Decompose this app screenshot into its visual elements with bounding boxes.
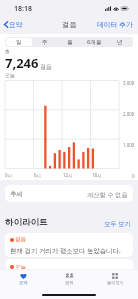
staticText: 총 (5, 48, 10, 54)
button[interactable]: 일 (6, 38, 32, 46)
staticText: 년 (117, 39, 123, 46)
staticText: 0 (132, 173, 135, 179)
staticText: 요약 (9, 20, 23, 29)
button[interactable]: 모두 보기 (102, 217, 133, 229)
button[interactable]: 오늘 (5, 259, 133, 269)
staticText: 오늘 (15, 264, 27, 269)
staticText: 2,000 (123, 111, 135, 117)
button[interactable]: Browse (92, 270, 138, 288)
staticText: 걸음 (62, 20, 77, 29)
staticText: 12시 (63, 172, 73, 178)
staticText: 1,000 (123, 142, 135, 148)
staticText: 3,000 (123, 80, 135, 86)
button[interactable]: Sharing (46, 270, 92, 288)
button[interactable]: 요약 (0, 18, 27, 31)
staticText: 둘러보기 (107, 280, 124, 285)
staticText: 추세 (10, 190, 23, 198)
staticText: 0시 (5, 172, 12, 178)
staticText: 6개월 (87, 38, 102, 46)
button[interactable]: 주 (32, 38, 57, 46)
button[interactable]: 년 (107, 38, 132, 46)
button[interactable]: 월 (57, 38, 82, 46)
staticText: 18:18 (14, 4, 32, 14)
staticText: 걸음 (15, 236, 27, 243)
staticText: 월 (67, 39, 73, 46)
staticText: 주 (42, 39, 48, 46)
staticText: 오늘 (5, 72, 15, 78)
button[interactable]: 추세 (5, 185, 133, 202)
button[interactable]: 데이터 추가 (93, 18, 138, 31)
staticText: 일 (16, 39, 22, 46)
staticText: 하이라이트 (5, 217, 48, 228)
staticText: 공유 (65, 280, 74, 285)
button[interactable]: 6개월 (82, 38, 107, 46)
staticText: 7,246 (5, 54, 39, 72)
staticText: 현재 걷기 거리가 평소보다 높았습니다. (10, 246, 121, 255)
staticText: 걸음 (40, 63, 52, 71)
staticText: 요약 (19, 280, 28, 285)
staticText: 6시 (34, 172, 41, 178)
button[interactable]: 걸음 (5, 233, 133, 257)
staticText: 계산할 수 없음 (87, 190, 128, 198)
button[interactable]: Summary (0, 270, 46, 288)
staticText: 18시 (92, 172, 102, 178)
